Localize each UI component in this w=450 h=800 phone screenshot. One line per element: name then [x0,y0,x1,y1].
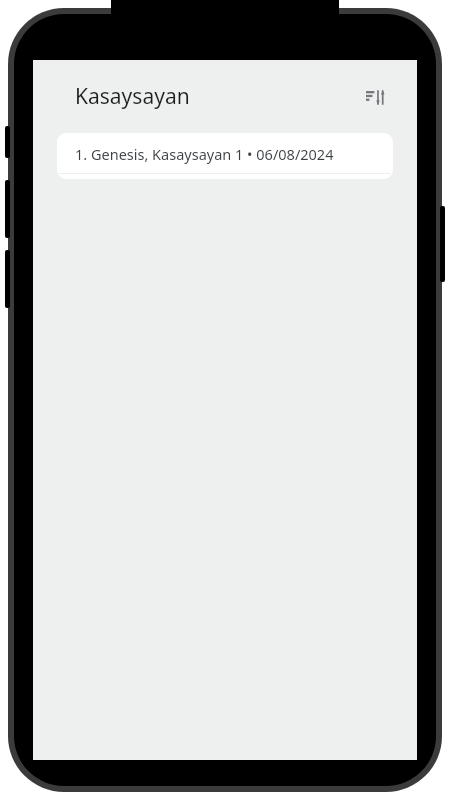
button[interactable]: Sort [355,77,395,117]
staticText: 1. Genesis, Kasaysayan 1 • 06/08/2024 [75,144,334,164]
staticText: Kasaysayan [75,82,190,111]
button[interactable]: 1. Genesis, Kasaysayan 1 • 06/08/2024 [57,133,393,179]
